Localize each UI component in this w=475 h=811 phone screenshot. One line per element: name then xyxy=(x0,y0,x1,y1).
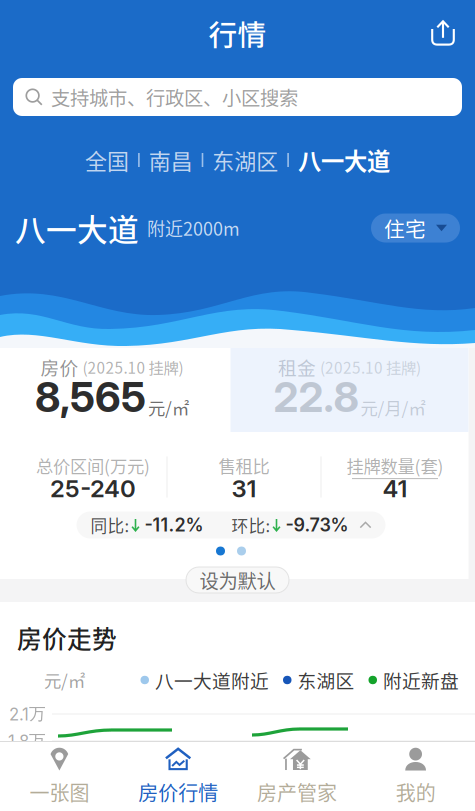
staticText: 挂牌数量(套) xyxy=(346,453,443,478)
staticText: 支持城市、行政区、小区搜索 xyxy=(51,83,298,111)
button[interactable]: 一张图 xyxy=(0,742,119,811)
staticText: 2.1万 xyxy=(9,703,46,724)
staticText: 我的 xyxy=(396,777,436,806)
staticText: 25-240 xyxy=(50,474,136,503)
button[interactable]: 设为默认 xyxy=(186,567,289,593)
button[interactable]: 南昌 xyxy=(149,147,193,173)
staticText: 八一大道附近 xyxy=(155,666,269,693)
staticText: 房价 xyxy=(40,353,78,380)
button[interactable]: 分享 xyxy=(420,10,466,56)
button[interactable]: 房产管家 xyxy=(237,742,356,811)
staticText: 元/㎡ xyxy=(148,395,189,420)
staticText: 附近2000m xyxy=(147,215,240,241)
staticText: 全国 xyxy=(85,144,129,176)
staticText: 同比: xyxy=(90,513,129,537)
staticText: 8,565 xyxy=(35,372,146,422)
staticText: (2025.10 挂牌) xyxy=(320,356,421,378)
staticText: 东湖区 xyxy=(297,666,354,693)
button[interactable]: 租金 xyxy=(230,348,468,441)
staticText: 租金 xyxy=(278,353,316,380)
button[interactable]: 全国 xyxy=(85,147,129,173)
button[interactable]: 我的 xyxy=(356,742,475,811)
button[interactable]: 同比: xyxy=(76,511,385,538)
staticText: 一张图 xyxy=(29,777,89,806)
staticText: 房产管家 xyxy=(257,777,337,806)
button[interactable]: 住宅 xyxy=(371,213,460,242)
staticText: 八一大道 xyxy=(298,143,390,177)
staticText: -11.2% xyxy=(144,514,203,536)
staticText: 房价行情 xyxy=(138,777,218,806)
staticText: 元/月/㎡ xyxy=(360,395,425,420)
staticText: 八一大道 xyxy=(15,206,139,250)
staticText: 设为默认 xyxy=(199,566,275,594)
staticText: 总价区间(万元) xyxy=(36,453,150,478)
button[interactable]: 东湖区 xyxy=(212,147,278,173)
staticText: 环比: xyxy=(231,513,270,537)
staticText: 附近新盘 xyxy=(383,666,459,693)
button[interactable]: 房价行情 xyxy=(119,742,238,811)
staticText: 元/㎡ xyxy=(44,667,85,693)
staticText: 南昌 xyxy=(149,144,193,176)
button[interactable]: 房价 xyxy=(0,348,230,441)
staticText: 41 xyxy=(382,474,407,503)
staticText: 房价走势 xyxy=(17,620,117,656)
staticText: (2025.10 挂牌) xyxy=(82,356,183,378)
staticText: 东湖区 xyxy=(212,144,278,176)
button[interactable]: 支持城市、行政区、小区搜索 xyxy=(13,78,462,116)
staticText: 31 xyxy=(231,474,256,503)
staticText: 22.8 xyxy=(273,372,358,422)
staticText: 住宅 xyxy=(384,213,426,243)
staticText: 1.8万 xyxy=(8,730,46,751)
button[interactable]: 八一大道 xyxy=(298,147,390,173)
staticText: 售租比 xyxy=(218,453,269,478)
staticText: 行情 xyxy=(208,12,266,54)
staticText: -9.73% xyxy=(285,514,348,536)
